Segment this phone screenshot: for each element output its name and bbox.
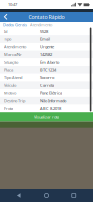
staticText: ABC 8-2018: [40, 106, 61, 111]
staticText: Urgente: [40, 44, 54, 49]
button[interactable]: Visualizar rota: [0, 112, 93, 122]
staticText: Atendimento: [30, 22, 52, 27]
staticText: Contato Rápido: [28, 13, 64, 21]
staticText: Tipo Atend: [4, 75, 22, 80]
button[interactable]: Atendimento: [28, 22, 54, 27]
staticText: 142582: [40, 52, 52, 57]
staticText: Id: [4, 29, 7, 34]
staticText: BTC1234: [40, 67, 56, 72]
staticText: Veículo: [4, 83, 16, 88]
staticText: Não Informado: [40, 98, 66, 103]
staticText: Email: [40, 36, 50, 42]
staticText: Pane Elétrica: [40, 90, 62, 96]
staticText: Placa: [4, 67, 13, 72]
staticText: Tipo: [4, 36, 11, 42]
staticText: Em Aberto: [40, 59, 59, 65]
button[interactable]: Dados Gerais: [2, 22, 28, 27]
staticText: 10:47: [8, 2, 17, 7]
staticText: Atendimento: [4, 44, 26, 49]
button[interactable]: Home: [38, 189, 54, 202]
button[interactable]: Back: [11, 189, 27, 202]
staticText: Situação: [4, 59, 18, 65]
staticText: Frota: [4, 106, 13, 111]
staticText: Marca/Nr: [4, 52, 22, 57]
staticText: 5528: [40, 29, 48, 34]
button[interactable]: Recent apps: [66, 189, 82, 202]
staticText: Carreta: [40, 83, 54, 88]
button[interactable]: Back: [0, 12, 12, 22]
staticText: Dados Gerais: [3, 22, 27, 27]
staticText: Visualizar rota: [34, 114, 59, 120]
staticText: Destino Trip: [4, 98, 25, 103]
staticText: Socorro: [40, 75, 54, 80]
staticText: Motivo: [4, 90, 16, 96]
